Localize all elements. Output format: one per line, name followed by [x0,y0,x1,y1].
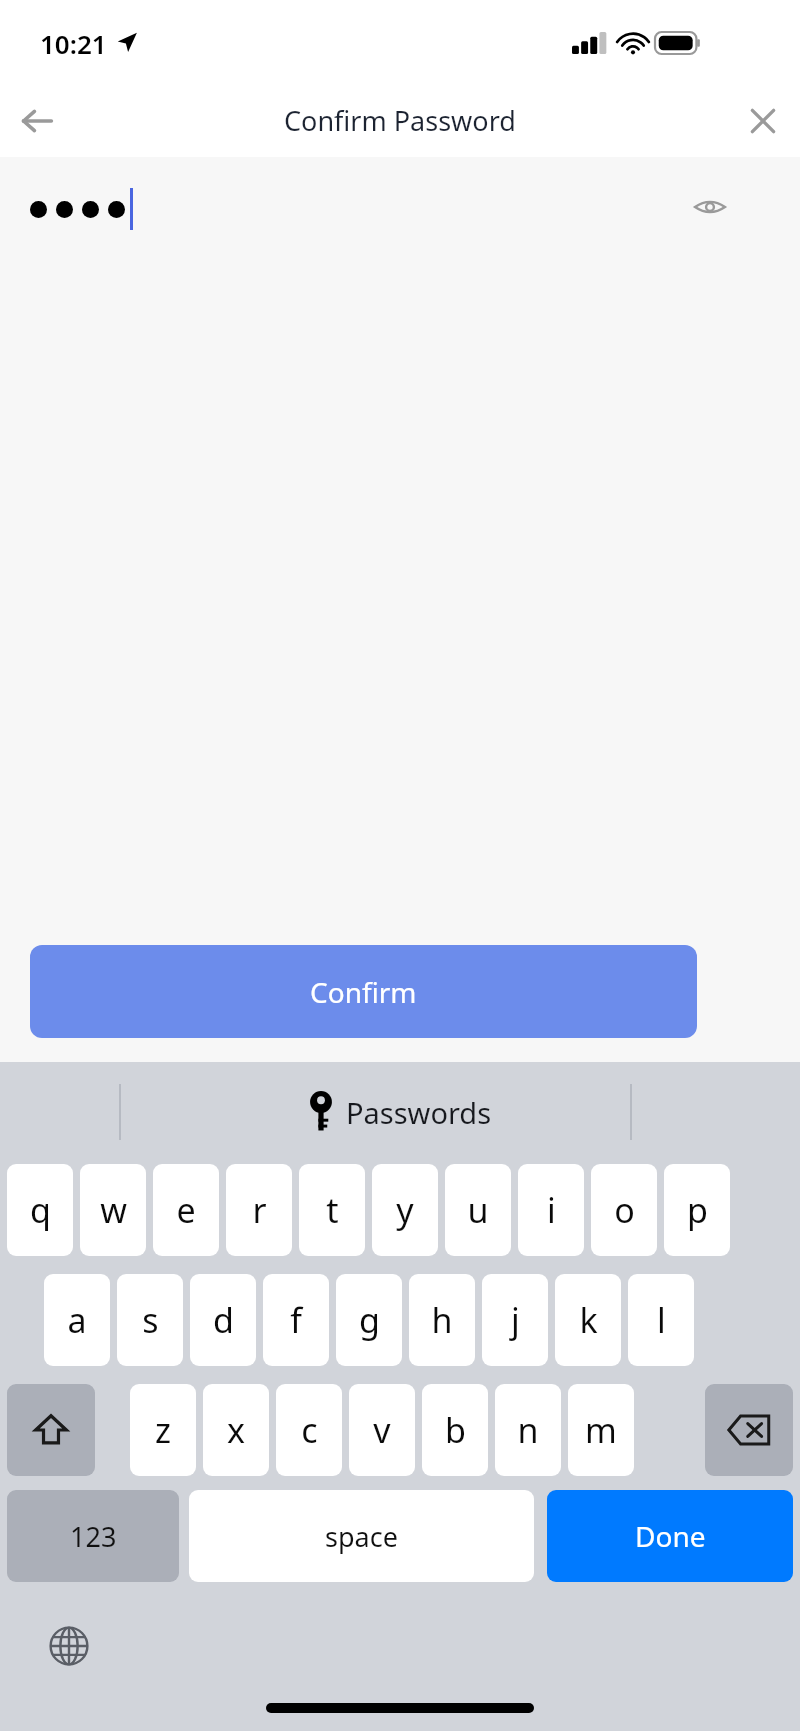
button[interactable]: u [445,1164,511,1256]
button[interactable]: Confirm [30,945,697,1038]
staticText: v [373,1407,391,1453]
staticText: n [517,1407,539,1453]
staticText: g [359,1297,380,1343]
staticText: y [396,1187,414,1233]
staticText: 123 [70,1518,117,1555]
button[interactable]: d [190,1274,256,1366]
staticText: j [511,1297,520,1343]
button[interactable]: e [153,1164,219,1256]
button[interactable]: Change keyboard [40,1617,98,1675]
button[interactable]: n [495,1384,561,1476]
button[interactable]: 123 [7,1490,179,1582]
button[interactable]: h [409,1274,475,1366]
staticText: i [547,1187,556,1233]
button[interactable]: Close [726,84,800,157]
button[interactable]: v [349,1384,415,1476]
staticText: s [142,1297,159,1343]
button[interactable]: p [664,1164,730,1256]
button[interactable]: r [226,1164,292,1256]
staticText: r [252,1187,267,1233]
button[interactable]: s [117,1274,183,1366]
staticText: l [657,1297,666,1343]
button[interactable]: f [263,1274,329,1366]
staticText: z [155,1407,171,1453]
button[interactable]: t [299,1164,365,1256]
staticText: t [326,1187,339,1233]
staticText: k [579,1297,598,1343]
staticText: a [67,1297,87,1343]
staticText: q [30,1187,51,1233]
button[interactable]: q [7,1164,73,1256]
button[interactable]: m [568,1384,634,1476]
button[interactable]: Shift [7,1384,95,1476]
button[interactable]: l [628,1274,694,1366]
staticText: w [100,1187,127,1233]
staticText: u [467,1187,489,1233]
button[interactable]: y [372,1164,438,1256]
button[interactable]: Backspace [705,1384,793,1476]
button[interactable]: Done [547,1490,793,1582]
staticText: Done [635,1517,706,1555]
button[interactable]: a [44,1274,110,1366]
button[interactable]: space [189,1490,534,1582]
button[interactable]: g [336,1274,402,1366]
staticText: d [213,1297,234,1343]
button[interactable]: x [203,1384,269,1476]
button[interactable]: i [518,1164,584,1256]
button[interactable]: o [591,1164,657,1256]
button[interactable]: w [80,1164,146,1256]
staticText: f [290,1297,302,1343]
staticText: x [227,1407,245,1453]
button[interactable]: c [276,1384,342,1476]
staticText: e [176,1187,196,1233]
button[interactable]: Show password [680,177,740,237]
staticText: h [431,1297,453,1343]
staticText: m [585,1407,617,1453]
staticText: c [301,1407,318,1453]
staticText: 10:21 [40,26,107,61]
button[interactable]: b [422,1384,488,1476]
staticText: space [325,1518,398,1555]
button[interactable]: k [555,1274,621,1366]
button[interactable]: j [482,1274,548,1366]
staticText: Confirm [310,973,417,1011]
staticText: Confirm Password [284,102,516,139]
button[interactable]: Passwords [308,1091,492,1133]
staticText: p [687,1187,708,1233]
staticText: o [614,1187,635,1233]
staticText: Passwords [346,1093,492,1132]
button[interactable]: z [130,1384,196,1476]
button[interactable]: Back [0,84,74,157]
staticText: b [445,1407,466,1453]
